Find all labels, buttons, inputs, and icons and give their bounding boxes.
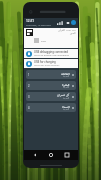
staticText: 12:31 bbox=[26, 19, 35, 23]
staticText: USB for charging bbox=[34, 60, 56, 64]
staticText: الفاتحة bbox=[61, 72, 70, 75]
button[interactable]: القرآن bbox=[24, 28, 78, 48]
button[interactable]: Settings bbox=[71, 20, 76, 25]
button[interactable]: USB for charging bbox=[24, 59, 78, 68]
staticText: السور bbox=[70, 32, 76, 35]
staticText: القرآن bbox=[58, 29, 65, 32]
staticText: آل عمران bbox=[57, 93, 70, 97]
button[interactable]: 4 bbox=[26, 103, 76, 112]
staticText: 0:00 bbox=[41, 39, 46, 42]
staticText: 1 bbox=[28, 73, 30, 77]
button[interactable]: Home bbox=[46, 150, 56, 160]
staticText: البقرة bbox=[62, 83, 70, 86]
button[interactable]: Back bbox=[30, 150, 40, 160]
staticText: 3 bbox=[28, 95, 30, 99]
staticText: Thursday, 15 February bbox=[26, 23, 52, 26]
staticText: Touch to disable USB debugging bbox=[34, 54, 69, 57]
button[interactable]: Recents bbox=[62, 150, 72, 160]
staticText: 2 bbox=[28, 84, 30, 88]
staticText: المدينة bbox=[63, 86, 70, 89]
button[interactable]: USB debugging connected bbox=[24, 49, 78, 58]
staticText: 4 bbox=[28, 106, 30, 110]
button[interactable]: 2 bbox=[26, 81, 76, 90]
staticText: النساء bbox=[62, 105, 70, 108]
button[interactable]: 1 bbox=[26, 70, 76, 79]
staticText: المدينة bbox=[63, 108, 70, 111]
staticText: 12:31 PM bbox=[66, 29, 76, 32]
staticText: المدينة bbox=[63, 97, 70, 100]
staticText: المدينة bbox=[63, 75, 70, 78]
staticText: Touch for more options bbox=[34, 64, 60, 67]
staticText: USB debugging connected bbox=[34, 50, 69, 54]
button[interactable]: 3 bbox=[26, 92, 76, 101]
